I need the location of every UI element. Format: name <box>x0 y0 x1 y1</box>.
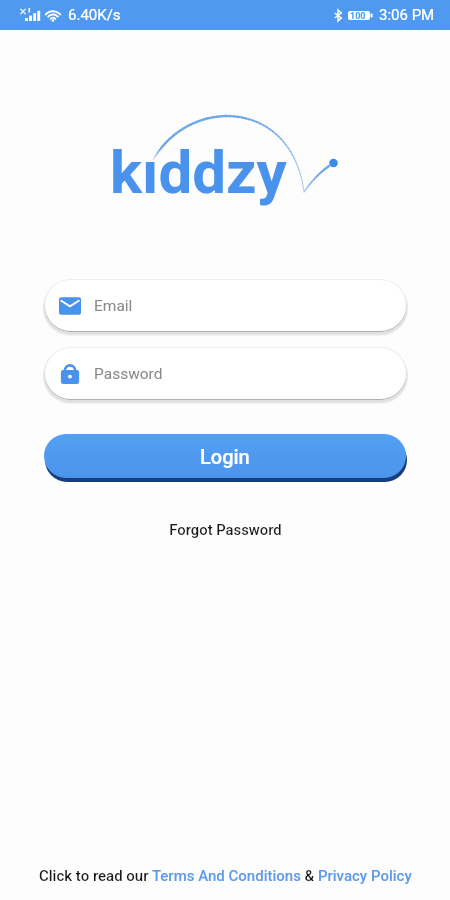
button[interactable]: Click to read our Terms And Conditions &… <box>39 867 412 885</box>
button[interactable]: Password <box>44 347 407 400</box>
button[interactable]: Email <box>44 279 407 332</box>
staticText: Login <box>200 445 250 468</box>
staticText: kıddzy <box>110 137 287 207</box>
staticText: 6.40K/s <box>68 6 121 24</box>
button[interactable]: Forgot Password <box>161 518 290 541</box>
staticText: 100 <box>350 11 366 22</box>
button[interactable]: Login <box>44 434 406 478</box>
staticText: Email <box>94 297 133 315</box>
staticText: 3:06 PM <box>379 6 435 24</box>
staticText: Password <box>94 365 163 383</box>
